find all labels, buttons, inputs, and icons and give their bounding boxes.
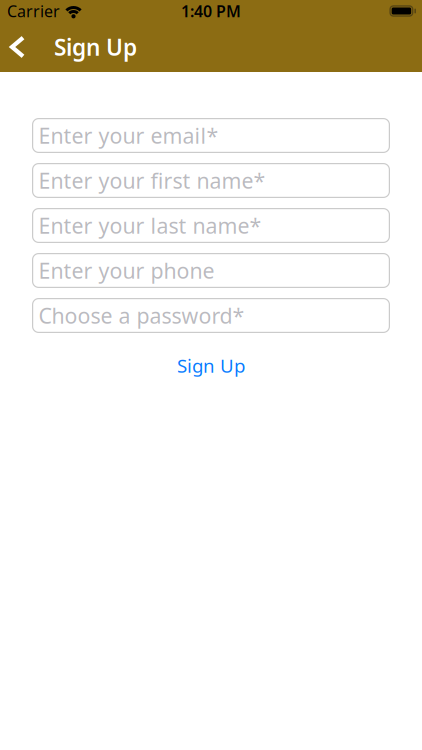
staticText: Choose a password* — [38, 301, 244, 330]
staticText: Enter your first name* — [38, 166, 265, 195]
staticText: Sign Up — [177, 353, 245, 378]
staticText: Enter your phone — [38, 256, 214, 285]
staticText: Sign Up — [54, 32, 137, 62]
staticText: Enter your email* — [38, 121, 218, 150]
button[interactable]: Back — [0, 21, 26, 72]
staticText: Carrier — [7, 0, 60, 22]
staticText: Enter your last name* — [38, 211, 261, 240]
staticText: 1:40 PM — [181, 0, 241, 22]
button[interactable]: Sign Up — [177, 343, 245, 378]
